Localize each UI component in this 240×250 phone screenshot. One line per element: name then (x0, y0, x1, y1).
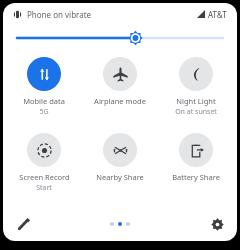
staticText: Airplane mode (94, 96, 146, 106)
staticText: Screen Record (19, 172, 70, 182)
staticText: 5G (39, 107, 49, 117)
staticText: AT&T (208, 9, 227, 20)
button[interactable]: Edit tiles (11, 212, 35, 236)
button[interactable]: Screen Record (9, 131, 79, 193)
button[interactable]: Airplane mode (85, 55, 155, 106)
staticText: Start (36, 183, 52, 193)
staticText: On at sunset (175, 107, 217, 117)
button[interactable]: Night Light (161, 55, 231, 117)
button[interactable]: Battery Share (161, 131, 231, 182)
button[interactable]: Mobile data (9, 55, 79, 117)
button[interactable]: Settings (205, 212, 229, 236)
button[interactable]: Nearby Share (85, 131, 155, 182)
button[interactable]: Brightness (17, 25, 223, 51)
staticText: Nearby Share (96, 172, 144, 182)
staticText: Night Light (176, 96, 216, 106)
staticText: Battery Share (172, 172, 220, 182)
staticText: Phone on vibrate (27, 9, 92, 20)
staticText: Mobile data (23, 96, 65, 106)
